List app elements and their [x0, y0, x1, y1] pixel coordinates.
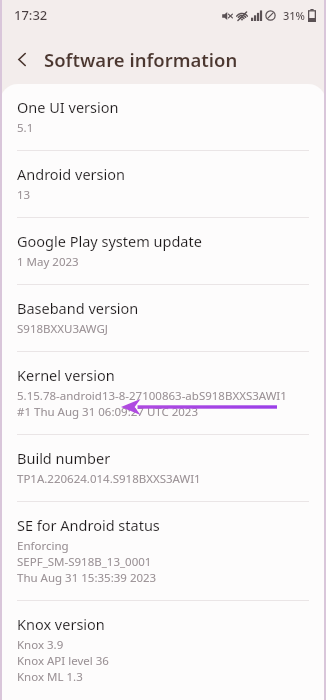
staticText: Baseband version [17, 298, 139, 318]
staticText: Knox ML 1.3 [17, 669, 83, 685]
staticText: 5.1 [17, 120, 34, 136]
staticText: Software information [44, 47, 238, 72]
button[interactable]: Back [0, 37, 44, 81]
staticText: TP1A.220624.014.S918BXXS3AWI1 [17, 471, 201, 487]
staticText: Knox API level 36 [17, 653, 109, 669]
staticText: SE for Android status [17, 515, 160, 535]
staticText: Enforcing [17, 538, 69, 554]
staticText: 1 May 2023 [17, 254, 79, 270]
staticText: Kernel version [17, 365, 115, 385]
button[interactable]: Google Play system update [0, 218, 326, 284]
staticText: Google Play system update [17, 231, 202, 251]
staticText: #1 Thu Aug 31 06:09:27 UTC 2023 [17, 404, 199, 420]
staticText: Knox version [17, 614, 105, 634]
staticText: Knox 3.9 [17, 637, 64, 653]
staticText: SEPF_SM-S918B_13_0001 [17, 554, 152, 570]
button[interactable]: Build number [0, 435, 326, 501]
staticText: 31% [283, 8, 305, 23]
staticText: 13 [17, 187, 31, 203]
button[interactable]: Android version [0, 151, 326, 217]
staticText: Build number [17, 448, 111, 468]
staticText: Android version [17, 164, 125, 184]
staticText: S918BXXU3AWGJ [17, 321, 108, 337]
staticText: 5.15.78-android13-8-27100863-abS918BXXS3… [17, 388, 287, 404]
button[interactable]: Kernel version [0, 352, 326, 434]
button[interactable]: SE for Android status [0, 502, 326, 600]
staticText: 17:32 [14, 6, 48, 24]
staticText: One UI version [17, 97, 119, 117]
staticText: Thu Aug 31 15:35:39 2023 [17, 570, 157, 586]
button[interactable]: One UI version [0, 84, 326, 150]
button[interactable]: Baseband version [0, 285, 326, 351]
button[interactable]: Knox version [0, 601, 326, 700]
